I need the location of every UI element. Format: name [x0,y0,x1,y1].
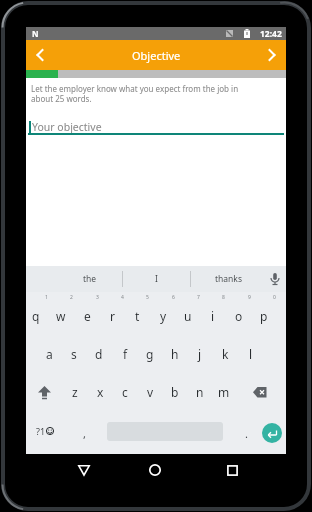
staticText: 9 [248,294,251,301]
staticText: h [171,346,179,362]
button[interactable]: z [63,374,87,410]
staticText: c [122,384,128,400]
staticText: 5 [146,294,149,301]
staticText: Objective [132,48,181,63]
staticText: l [249,346,253,362]
staticText: s [71,346,77,362]
staticText: 6 [172,294,175,301]
staticText: v [147,384,154,400]
button[interactable] [70,456,98,484]
staticText: b [171,384,179,400]
staticText: I [155,273,158,285]
button[interactable]: thanks [202,266,254,292]
button[interactable] [141,456,169,484]
staticText: 7 [197,294,200,301]
staticText: 4 [121,294,124,301]
staticText: g [146,346,154,362]
staticText: 0 [273,294,276,301]
button[interactable]: m [212,374,236,410]
staticText: ?1 [36,425,46,437]
button[interactable] [264,266,286,292]
staticText: k [222,346,229,362]
staticText: 8 [222,294,225,301]
button[interactable]: j [188,336,212,372]
staticText: 1 [45,294,48,301]
button[interactable]: y [151,299,175,333]
button[interactable]: p [252,299,276,333]
staticText: t [135,308,140,324]
staticText: the [83,273,97,285]
button[interactable]: a [37,336,61,372]
button[interactable]: s [62,336,86,372]
button[interactable] [29,374,59,410]
button[interactable]: u [176,299,200,333]
staticText: m [218,384,230,400]
staticText: d [95,346,103,362]
staticText: 2 [70,294,73,301]
button[interactable]: the [64,266,116,292]
button[interactable] [245,374,275,410]
button[interactable]: , [73,417,95,449]
staticText: Let the employer know what you expect fr… [31,83,239,104]
button[interactable]: n [188,374,212,410]
button[interactable] [218,456,246,484]
staticText: u [184,308,192,324]
staticText: Your objective [32,120,102,134]
staticText: y [160,308,167,324]
staticText: 12:42 [260,28,282,40]
button[interactable]: q [24,299,48,333]
button[interactable]: f [113,336,137,372]
staticText: w [56,308,66,324]
button[interactable]: i [201,299,225,333]
staticText: n [196,384,204,400]
staticText: , [83,426,86,441]
button[interactable]: o [227,299,251,333]
staticText: q [32,308,40,324]
staticText: N [32,28,39,39]
button[interactable]: Your objective [26,116,286,136]
staticText: j [198,346,202,362]
button[interactable]: t [125,299,149,333]
staticText: z [72,384,78,400]
staticText: thanks [215,273,242,285]
button[interactable] [262,423,282,443]
staticText: e [84,308,91,324]
button[interactable] [26,40,54,70]
button[interactable]: h [163,336,187,372]
button[interactable]: k [213,336,237,372]
staticText: f [123,346,128,362]
button[interactable]: ?1 [28,413,62,449]
button[interactable]: e [75,299,99,333]
button[interactable]: r [100,299,124,333]
button[interactable]: d [87,336,111,372]
staticText: p [260,308,268,324]
button[interactable]: . [235,417,257,449]
staticText: x [97,384,104,400]
button[interactable]: g [138,336,162,372]
button[interactable]: l [239,336,263,372]
staticText: a [46,346,53,362]
staticText: i [211,308,215,324]
staticText: o [235,308,243,324]
button[interactable]: c [113,374,137,410]
button[interactable]: w [49,299,73,333]
button[interactable]: x [88,374,112,410]
button[interactable]: b [163,374,187,410]
button[interactable]: v [138,374,162,410]
staticText: r [110,308,115,324]
button[interactable] [258,40,286,70]
button[interactable]: I [130,266,182,292]
staticText: 3 [96,294,99,301]
staticText: . [245,426,248,441]
